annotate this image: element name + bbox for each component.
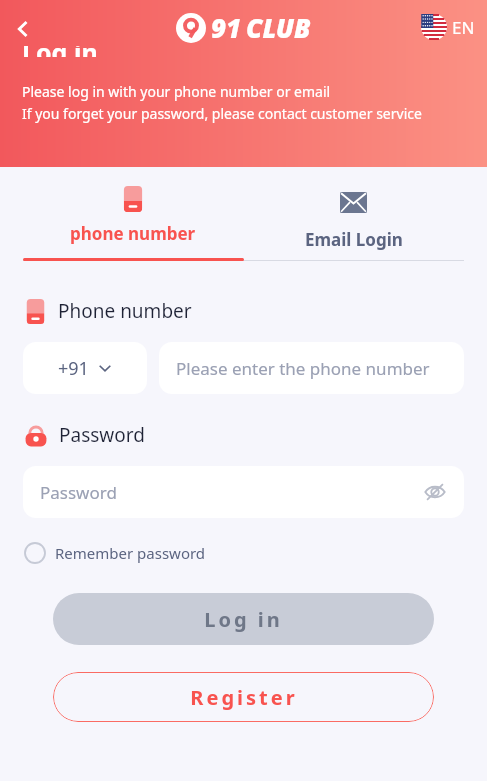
staticText: phone number	[70, 222, 196, 245]
button[interactable]: Show password	[422, 479, 448, 505]
button[interactable]: Please enter the phone number	[159, 342, 464, 394]
staticText: If you forget your password, please cont…	[22, 104, 422, 123]
staticText: Please enter the phone number	[176, 357, 430, 380]
staticText: EN	[452, 16, 475, 39]
staticText: Password	[59, 422, 145, 448]
staticText: CLUB	[246, 10, 311, 45]
staticText: +91	[58, 356, 89, 381]
staticText: Password	[40, 481, 117, 504]
staticText: Please log in with your phone number or …	[22, 82, 331, 101]
staticText: Email Login	[305, 228, 403, 251]
staticText: Log in	[22, 46, 98, 57]
other: Email	[340, 189, 367, 216]
button[interactable]: Back	[6, 12, 40, 46]
staticText: Remember password	[55, 543, 206, 563]
staticText: 91	[211, 10, 242, 45]
button[interactable]: +91	[23, 342, 147, 394]
button[interactable]: phone number	[23, 176, 243, 245]
button[interactable]: Email	[243, 176, 464, 251]
button[interactable]: Remember password	[23, 540, 207, 566]
staticText: Log in	[204, 606, 283, 633]
button[interactable]: Register	[53, 672, 434, 722]
button[interactable]: Language English	[419, 12, 477, 42]
button[interactable]: Log in	[53, 593, 434, 645]
staticText: Register	[190, 684, 298, 711]
button[interactable]: Password	[23, 466, 464, 518]
staticText: Phone number	[58, 298, 192, 324]
